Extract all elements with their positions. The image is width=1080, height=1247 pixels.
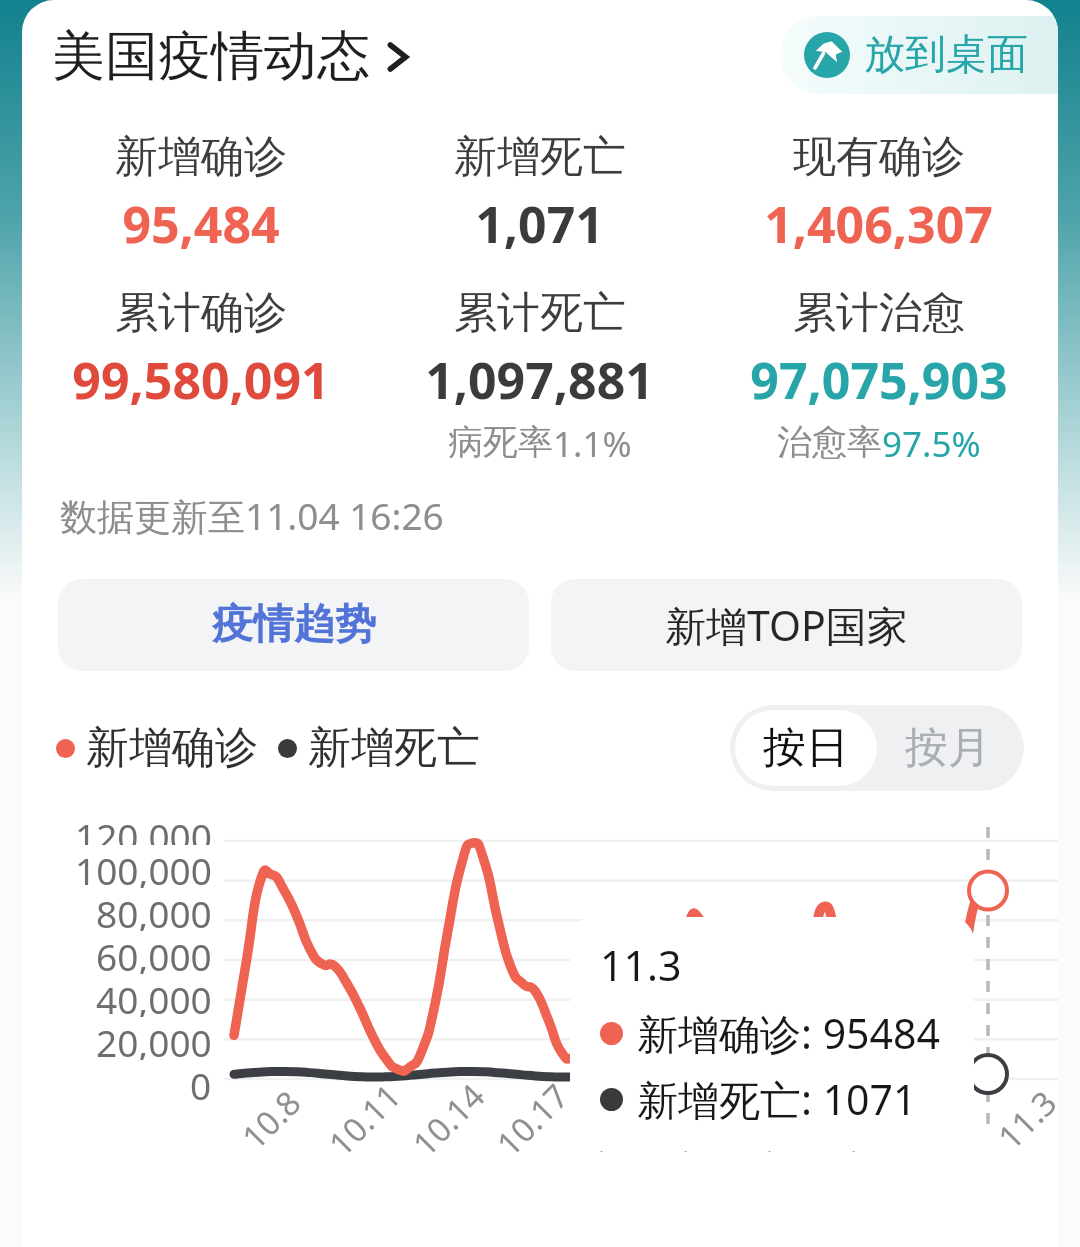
button[interactable]: 现有确诊 (709, 128, 1048, 260)
staticText: 累计确诊 (115, 286, 287, 340)
staticText: 80,000 (96, 888, 212, 931)
staticText: 美国疫情动态 (52, 23, 370, 90)
staticText: 按日 (763, 721, 849, 775)
button[interactable]: 按日 (735, 710, 877, 786)
staticText: 10.20 (570, 1073, 662, 1165)
staticText: 11.3 (600, 937, 682, 993)
staticText: 10.29 (822, 1073, 914, 1165)
staticText: 治愈率 (777, 420, 882, 464)
staticText: 10.17 (486, 1073, 578, 1165)
staticText: 10.23 (654, 1073, 746, 1165)
staticText: 11.3 (988, 1080, 1058, 1159)
staticText: 累计死亡 (454, 286, 626, 340)
staticText: 数据更新至11.04 16:26 (60, 490, 444, 541)
staticText: 新增TOP国家 (665, 597, 908, 653)
staticText: 累计治愈 (793, 286, 965, 340)
staticText: 新增确诊 (115, 130, 287, 184)
staticText: 新增死亡: 1071 (637, 1071, 917, 1127)
staticText: 99,580,091 (72, 346, 330, 414)
staticText: 1,071 (475, 190, 604, 258)
button[interactable]: 新增TOP国家 (551, 579, 1022, 671)
staticText: 现有确诊 (793, 130, 965, 184)
button[interactable]: 新增死亡 (370, 128, 709, 260)
staticText: 1.1% (553, 420, 632, 468)
staticText: 放到桌面 (864, 29, 1028, 81)
button[interactable]: 美国疫情动态 (52, 19, 410, 94)
staticText: 10.11 (318, 1073, 410, 1165)
staticText: 95,484 (122, 190, 280, 258)
staticText: 新增死亡 (454, 130, 626, 184)
staticText: 疫情趋势 (212, 599, 376, 651)
staticText: 10.14 (402, 1073, 494, 1165)
button[interactable]: 新增死亡 (278, 721, 480, 775)
staticText: 97.5% (882, 420, 981, 468)
staticText: 病死率 (448, 420, 553, 464)
staticText: 新增确诊 (86, 721, 258, 775)
staticText: 20,000 (96, 1017, 212, 1060)
button[interactable]: Add to home screen (780, 16, 1058, 94)
staticText: 40,000 (96, 974, 212, 1017)
other: Add to home screen (804, 32, 850, 78)
staticText: 新增死亡 (308, 721, 480, 775)
staticText: 100,000 (75, 845, 212, 888)
staticText: 新增确诊: 95484 (637, 1005, 940, 1061)
button[interactable]: 累计确诊 (32, 284, 370, 416)
staticText: 按月 (905, 721, 991, 775)
button[interactable]: 新增确诊 (56, 721, 258, 775)
staticText: 1,406,307 (764, 190, 993, 258)
staticText: 11.1 (904, 1080, 982, 1159)
button[interactable]: 疫情趋势 (58, 579, 529, 671)
button[interactable]: 新增确诊 (32, 128, 370, 260)
staticText: 120,000 (75, 811, 212, 845)
button[interactable]: 累计死亡 (370, 284, 709, 470)
staticText: 10.8 (232, 1080, 310, 1159)
staticText: 60,000 (96, 931, 212, 974)
button[interactable]: 累计治愈 (709, 284, 1048, 470)
button[interactable]: 按月 (877, 710, 1019, 786)
staticText: 0 (190, 1060, 212, 1103)
staticText: 10.26 (738, 1073, 830, 1165)
staticText: 1,097,881 (425, 346, 654, 414)
button[interactable]: 11.3 (570, 917, 974, 1151)
staticText: 97,075,903 (750, 346, 1008, 414)
